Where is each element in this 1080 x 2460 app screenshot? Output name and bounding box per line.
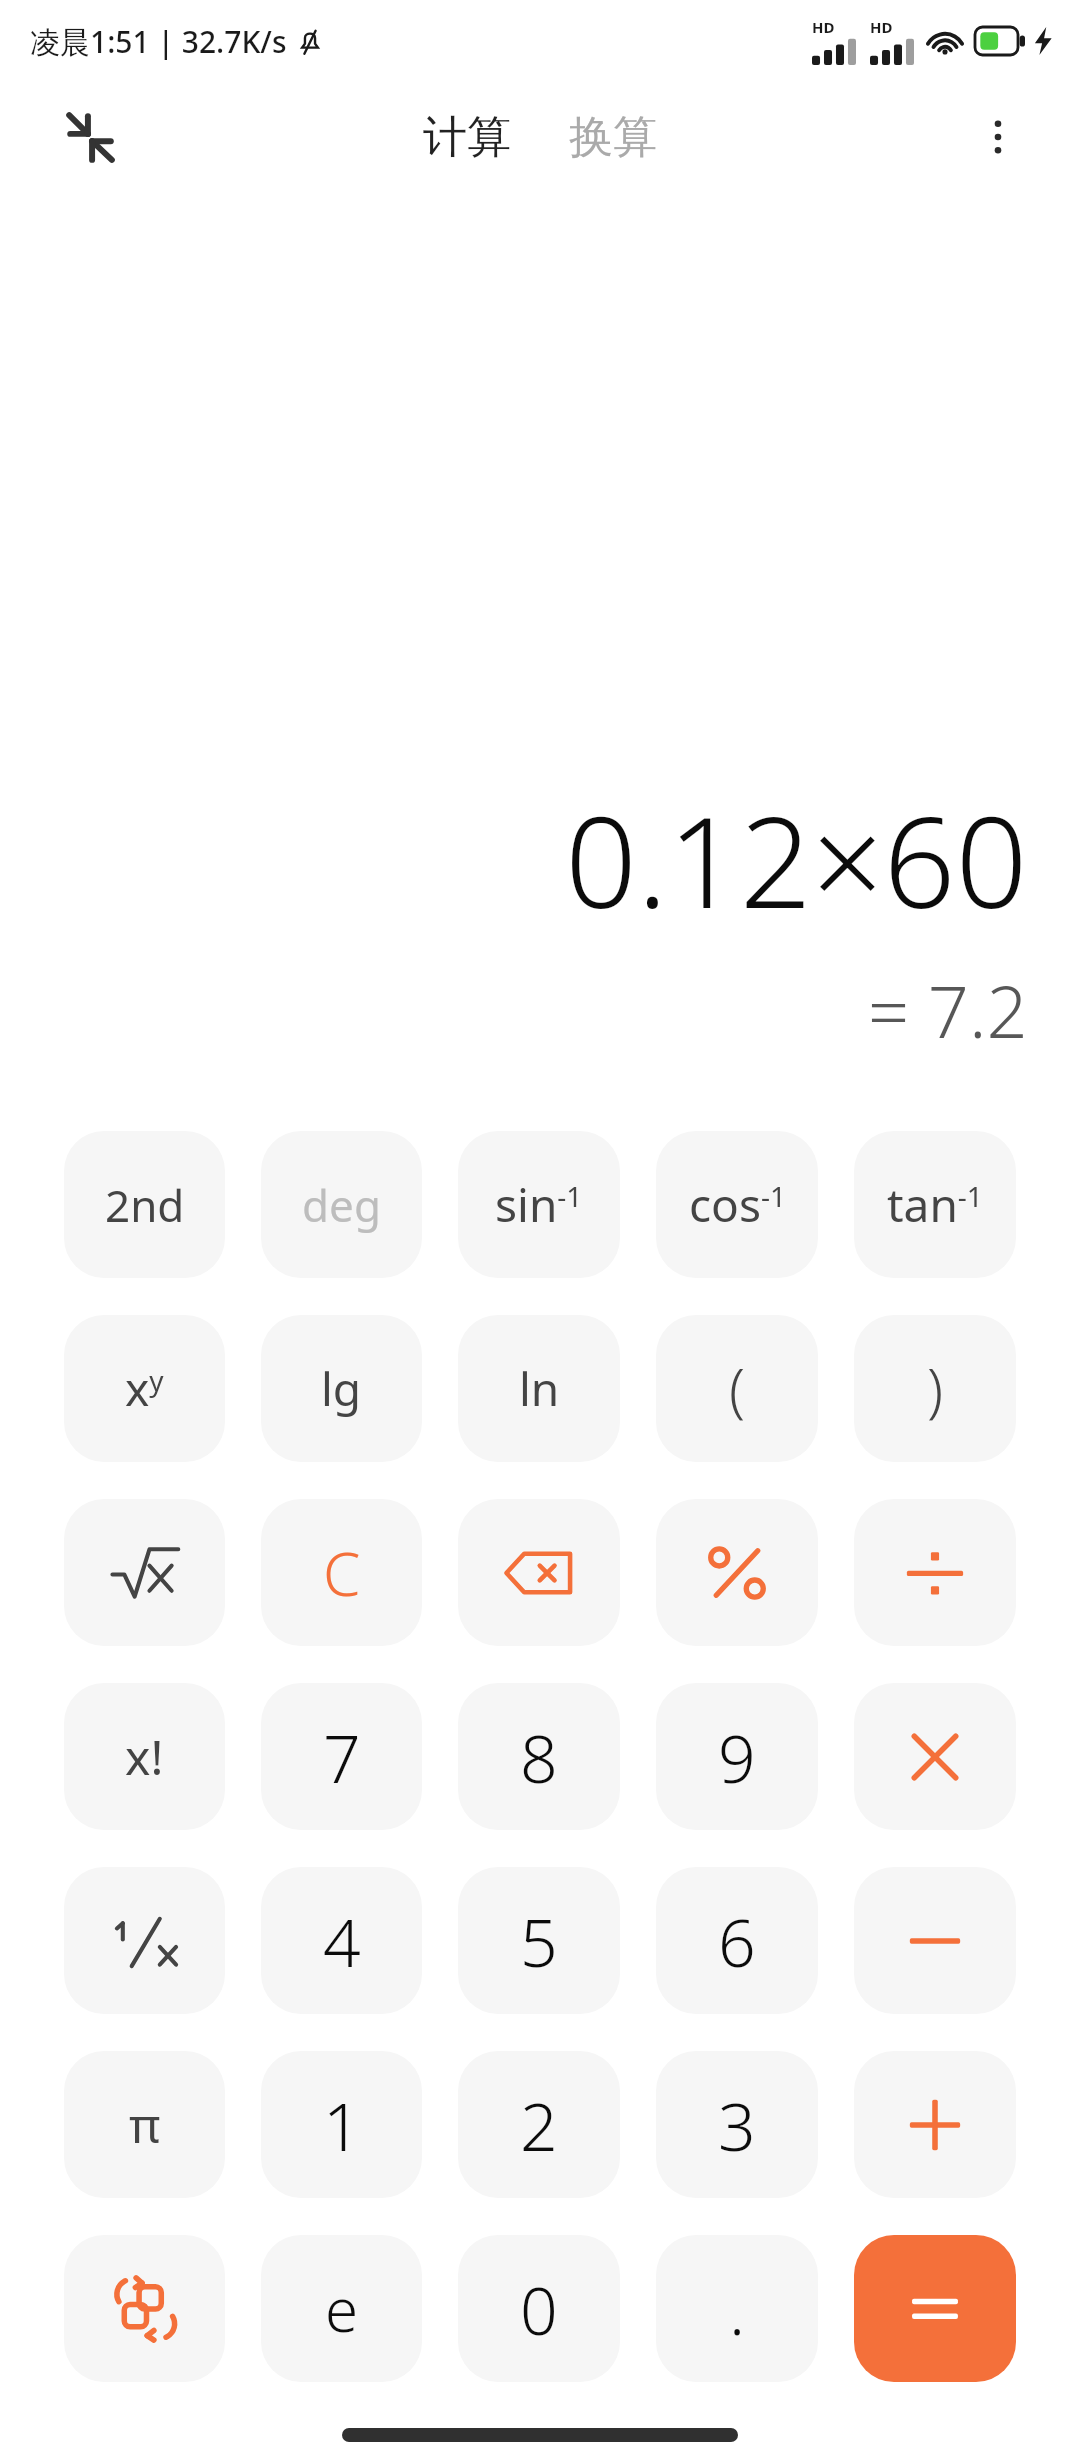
button[interactable]: deg <box>261 1131 422 1278</box>
button[interactable]: 2 <box>458 2051 620 2198</box>
button[interactable]: Square root <box>64 1499 225 1646</box>
staticText: ) <box>927 1349 944 1428</box>
button[interactable]: 2nd <box>64 1131 225 1278</box>
button[interactable]: sin-1 <box>458 1131 620 1278</box>
button[interactable]: x! <box>64 1683 225 1830</box>
button[interactable]: e <box>261 2235 422 2382</box>
button[interactable]: Percent <box>656 1499 818 1646</box>
button[interactable]: 1 <box>261 2051 422 2198</box>
button[interactable]: lg <box>261 1315 422 1462</box>
staticText: sin-1 <box>495 1173 583 1236</box>
staticText: ln <box>519 1357 560 1420</box>
button[interactable]: 7 <box>261 1683 422 1830</box>
staticText: HD <box>812 17 835 37</box>
button[interactable]: Collapse <box>52 99 128 175</box>
staticText: x! <box>125 1724 164 1789</box>
button[interactable]: Equals <box>854 2235 1016 2382</box>
button[interactable]: 9 <box>656 1683 818 1830</box>
button[interactable]: Backspace <box>458 1499 620 1646</box>
button[interactable]: 0 <box>458 2235 620 2382</box>
staticText: 6 <box>718 1896 756 1986</box>
staticText: 凌晨1:51 | 32.7K/s <box>30 21 287 62</box>
staticText: 0 <box>520 2264 558 2354</box>
button[interactable]: C <box>261 1499 422 1646</box>
button[interactable]: 8 <box>458 1683 620 1830</box>
button[interactable]: π <box>64 2051 225 2198</box>
button[interactable]: Multiply <box>854 1683 1016 1830</box>
button[interactable]: 计算 <box>413 102 521 173</box>
staticText: 1 <box>323 2080 361 2170</box>
staticText: . <box>729 2264 746 2354</box>
staticText: tan-1 <box>887 1173 983 1236</box>
staticText: ( <box>729 1349 746 1428</box>
button[interactable]: 3 <box>656 2051 818 2198</box>
staticText: = 7.2 <box>868 961 1028 1059</box>
button[interactable]: . <box>656 2235 818 2382</box>
staticText: 换算 <box>569 110 657 165</box>
button[interactable]: ) <box>854 1315 1016 1462</box>
button[interactable]: 换算 <box>559 102 667 173</box>
button[interactable]: tan-1 <box>854 1131 1016 1278</box>
staticText: C <box>323 1532 361 1614</box>
staticText: 7 <box>323 1712 361 1802</box>
staticText: 4 <box>323 1896 361 1986</box>
staticText: 3 <box>718 2080 756 2170</box>
button[interactable]: Plus <box>854 2051 1016 2198</box>
staticText: deg <box>302 1175 381 1235</box>
button[interactable]: Minus <box>854 1867 1016 2014</box>
button[interactable]: Divide <box>854 1499 1016 1646</box>
staticText: 2nd <box>105 1175 185 1235</box>
button[interactable]: More options <box>962 101 1034 173</box>
button[interactable]: ( <box>656 1315 818 1462</box>
button[interactable]: Unit converter <box>64 2235 225 2382</box>
button[interactable]: 4 <box>261 1867 422 2014</box>
staticText: 5 <box>520 1896 558 1986</box>
staticText: lg <box>321 1357 362 1420</box>
staticText: xy <box>125 1357 164 1420</box>
button[interactable]: ln <box>458 1315 620 1462</box>
staticText: 8 <box>520 1712 558 1802</box>
staticText: e <box>325 2268 359 2350</box>
staticText: 计算 <box>423 110 511 165</box>
staticText: cos-1 <box>689 1173 786 1236</box>
staticText: 0.12×60 <box>565 773 1028 945</box>
staticText: π <box>129 2092 161 2157</box>
button[interactable]: xy <box>64 1315 225 1462</box>
staticText: 2 <box>520 2080 558 2170</box>
button[interactable]: One over x <box>64 1867 225 2014</box>
button[interactable]: 6 <box>656 1867 818 2014</box>
button[interactable]: 5 <box>458 1867 620 2014</box>
staticText: 9 <box>718 1712 756 1802</box>
staticText: HD <box>870 17 893 37</box>
button[interactable]: cos-1 <box>656 1131 818 1278</box>
